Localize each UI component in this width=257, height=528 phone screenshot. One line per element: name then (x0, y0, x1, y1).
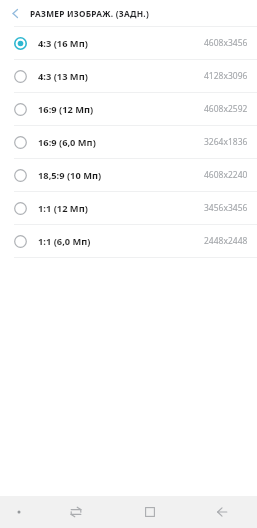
staticText: 4608x3456 (204, 37, 248, 49)
staticText: РАЗМЕР ИЗОБРАЖ. (ЗАДН.) (30, 8, 149, 19)
button[interactable]: Недавние приложения (114, 496, 186, 528)
button[interactable]: Назад (186, 496, 257, 528)
staticText: 16:9 (6,0 Мп) (38, 136, 96, 149)
button[interactable]: 1:1 (12 Мп) (0, 192, 257, 224)
staticText: 1:1 (6,0 Мп) (38, 235, 91, 248)
staticText: 3264x1836 (204, 136, 248, 148)
staticText: 18,5:9 (10 Мп) (38, 169, 102, 182)
staticText: 4:3 (16 Мп) (38, 37, 88, 50)
staticText: 4:3 (13 Мп) (38, 70, 88, 83)
button[interactable]: 4:3 (16 Мп) (0, 27, 257, 59)
button[interactable]: 1:1 (6,0 Мп) (0, 225, 257, 257)
button[interactable]: Назад (0, 0, 30, 26)
staticText: 4608x2240 (204, 169, 248, 181)
staticText: 3456x3456 (204, 202, 248, 214)
button[interactable]: 4:3 (13 Мп) (0, 60, 257, 92)
staticText: 4128x3096 (204, 70, 248, 82)
button[interactable]: 16:9 (6,0 Мп) (0, 126, 257, 158)
button[interactable]: Переключить раскладку (37, 496, 114, 528)
staticText: 4608x2592 (204, 103, 248, 115)
staticText: 16:9 (12 Мп) (38, 103, 94, 116)
staticText: 1:1 (12 Мп) (38, 202, 88, 215)
button[interactable]: 18,5:9 (10 Мп) (0, 159, 257, 191)
button[interactable]: 16:9 (12 Мп) (0, 93, 257, 125)
staticText: 2448x2448 (204, 235, 248, 247)
button[interactable]: Скрыть клавиатуру (0, 496, 37, 528)
